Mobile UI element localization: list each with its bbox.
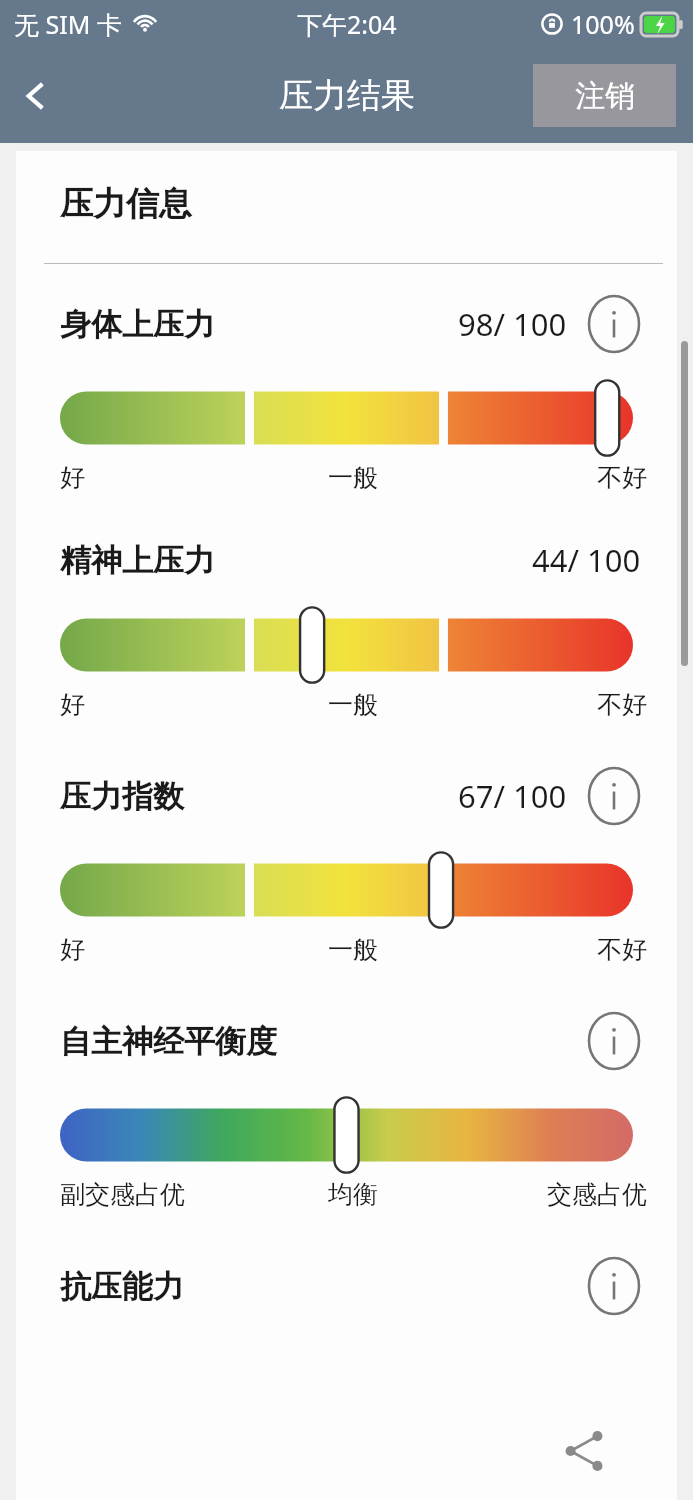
staticText: 一般 [255,689,451,720]
button[interactable]: 抗压能力 [60,1256,641,1316]
button[interactable]: Info [587,1256,641,1316]
staticText: 100% [571,7,635,41]
staticText: 不好 [451,462,647,493]
button[interactable]: Info [587,294,641,354]
staticText: 交感占优 [451,1179,647,1210]
staticText: 注销 [575,77,635,115]
staticText: 不好 [451,934,647,965]
button[interactable]: Share [553,1420,615,1482]
staticText: 67/ 100 [458,775,567,817]
staticText: 好 [60,462,255,493]
staticText: 好 [60,934,255,965]
staticText: 精神上压力 [60,541,215,580]
staticText: 不好 [451,689,647,720]
staticText: 压力结果 [279,74,415,117]
button[interactable]: 压力指数 [60,766,641,826]
staticText: 身体上压力 [60,305,215,344]
button[interactable]: 身体上压力 [60,294,641,354]
staticText: 副交感占优 [60,1179,255,1210]
button[interactable]: Info [587,1011,641,1071]
staticText: 一般 [255,934,451,965]
button[interactable]: 精神上压力 [60,539,641,581]
staticText: 自主神经平衡度 [60,1022,277,1061]
staticText: 好 [60,689,255,720]
staticText: 抗压能力 [60,1267,184,1306]
button[interactable]: 自主神经平衡度 [60,1011,641,1071]
button[interactable]: 注销 [533,64,676,127]
staticText: 无 SIM 卡 [14,7,122,41]
staticText: 压力指数 [60,777,184,816]
staticText: 压力信息 [60,183,192,225]
staticText: 均衡 [255,1179,451,1210]
staticText: 98/ 100 [458,303,567,345]
staticText: 下午2:04 [297,7,397,41]
button[interactable]: Info [587,766,641,826]
button[interactable]: Back [6,66,66,126]
staticText: 44/ 100 [532,539,641,581]
staticText: 一般 [255,462,451,493]
